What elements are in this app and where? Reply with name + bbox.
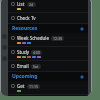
staticText: Get xyxy=(17,83,25,89)
staticText: Study xyxy=(17,49,29,55)
button[interactable]: Email xyxy=(8,61,88,71)
staticText: 4:00 xyxy=(33,50,40,55)
button[interactable]: Add to Resources xyxy=(79,26,85,32)
button[interactable]: Get xyxy=(8,81,88,94)
staticText: 2d xyxy=(29,2,34,7)
button[interactable]: Check Tv xyxy=(8,13,88,23)
button[interactable]: Week Schedule xyxy=(8,33,88,46)
staticText: Resources xyxy=(12,25,79,32)
button[interactable]: List xyxy=(8,0,88,12)
staticText: 11:15 xyxy=(29,84,38,89)
staticText: Check Tv xyxy=(17,15,36,21)
button[interactable]: Resources xyxy=(8,24,88,33)
staticText: Email xyxy=(17,63,29,69)
staticText: Sat xyxy=(33,64,39,69)
button[interactable]: Study xyxy=(8,47,88,60)
staticText: List xyxy=(17,1,25,7)
button[interactable]: Add to Upcoming xyxy=(79,74,85,80)
button[interactable]: Upcoming xyxy=(8,72,88,81)
staticText: 12:30 xyxy=(53,36,62,41)
staticText: Week Schedule xyxy=(17,35,49,41)
staticText: Upcoming xyxy=(12,73,79,80)
